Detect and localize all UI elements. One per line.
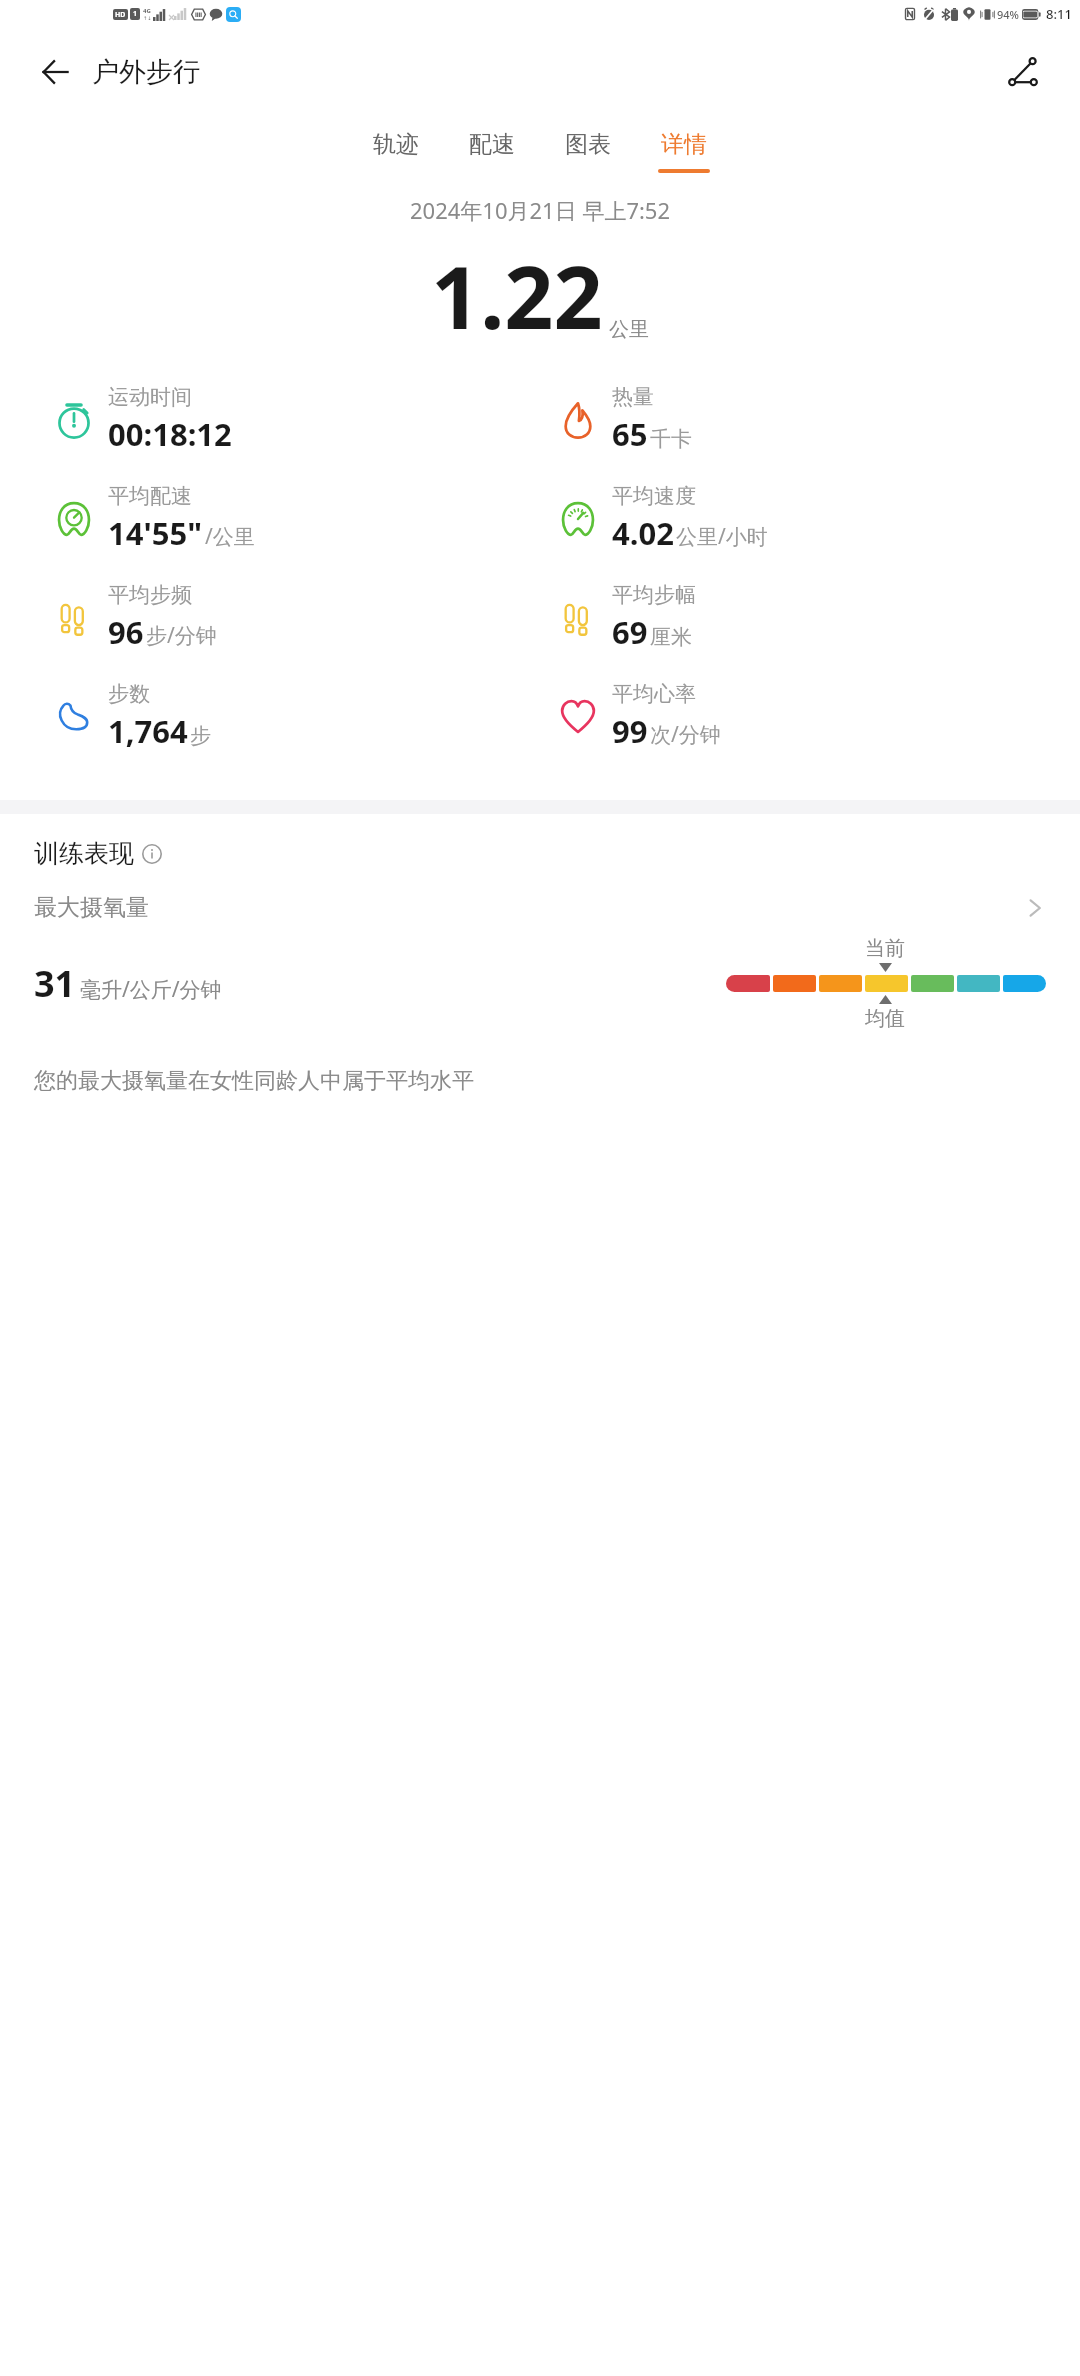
staticText: 训练表现 bbox=[34, 838, 134, 869]
button[interactable]: 最大摄氧量 bbox=[0, 893, 1080, 922]
staticText: 最大摄氧量 bbox=[34, 893, 149, 922]
staticText: ↑↓ bbox=[143, 15, 152, 21]
staticText: 65 bbox=[612, 413, 648, 455]
button[interactable]: Share bbox=[996, 45, 1050, 99]
other: More bbox=[1024, 897, 1046, 919]
staticText: 00:18:12 bbox=[108, 413, 232, 455]
staticText: 千卡 bbox=[650, 426, 692, 452]
button[interactable]: 配速 bbox=[444, 130, 540, 173]
staticText: 平均速度 bbox=[612, 483, 696, 509]
staticText: 图表 bbox=[565, 130, 611, 159]
button[interactable]: 图表 bbox=[540, 130, 636, 173]
staticText: 99 bbox=[612, 710, 648, 752]
staticText: 厘米 bbox=[650, 624, 692, 650]
staticText: 1,764 bbox=[108, 710, 188, 752]
staticText: 公里 bbox=[609, 317, 649, 342]
staticText: 轨迹 bbox=[373, 130, 419, 159]
staticText: 平均心率 bbox=[612, 681, 696, 707]
staticText: HD bbox=[115, 10, 126, 20]
staticText: 当前 bbox=[865, 936, 905, 961]
staticText: 平均步幅 bbox=[612, 582, 696, 608]
button[interactable]: Back bbox=[30, 47, 80, 97]
staticText: 热量 bbox=[612, 384, 654, 410]
staticText: 户外步行 bbox=[92, 55, 200, 89]
staticText: 94% bbox=[997, 7, 1019, 22]
staticText: 步/分钟 bbox=[146, 621, 217, 650]
staticText: 31 bbox=[34, 959, 76, 1008]
staticText: 步数 bbox=[108, 681, 150, 707]
staticText: 1 bbox=[133, 9, 138, 19]
staticText: 8:11 bbox=[1046, 5, 1072, 23]
staticText: 1.22 bbox=[431, 237, 603, 354]
button[interactable]: 详情 bbox=[636, 130, 732, 173]
staticText: 运动时间 bbox=[108, 384, 192, 410]
staticText: 公里/小时 bbox=[676, 522, 768, 551]
button[interactable]: 训练表现 bbox=[34, 838, 162, 869]
staticText: 96 bbox=[108, 611, 144, 653]
staticText: 69 bbox=[612, 611, 648, 653]
staticText: 您的最大摄氧量在女性同龄人中属于平均水平 bbox=[34, 1067, 474, 1095]
staticText: 2024年10月21日 早上7:52 bbox=[410, 195, 671, 225]
staticText: 详情 bbox=[661, 130, 707, 159]
staticText: 配速 bbox=[469, 130, 515, 159]
staticText: 4.02 bbox=[612, 512, 674, 554]
button[interactable]: 轨迹 bbox=[348, 130, 444, 173]
staticText: 步 bbox=[190, 723, 211, 749]
staticText: 平均步频 bbox=[108, 582, 192, 608]
staticText: /公里 bbox=[205, 522, 255, 551]
staticText: 14'55" bbox=[108, 512, 203, 554]
staticText: 平均配速 bbox=[108, 483, 192, 509]
staticText: 均值 bbox=[865, 1006, 905, 1031]
staticText: 次/分钟 bbox=[650, 720, 721, 749]
staticText: 毫升/公斤/分钟 bbox=[80, 975, 222, 1004]
staticText: 4G bbox=[143, 7, 151, 15]
